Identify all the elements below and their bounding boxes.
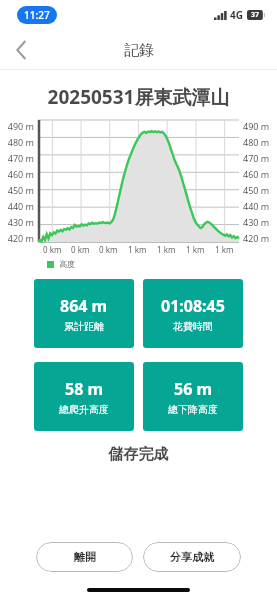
staticText: 420 m — [243, 232, 277, 242]
staticText: 440 m — [0, 200, 34, 210]
staticText: 0 km — [71, 244, 90, 255]
staticText: 11:27 — [24, 8, 50, 22]
staticText: 430 m — [243, 216, 277, 226]
button[interactable]: Back — [0, 30, 42, 70]
button[interactable]: 分享成就 — [143, 542, 241, 572]
staticText: 分享成就 — [170, 550, 214, 564]
staticText: 480 m — [0, 136, 34, 146]
staticText: 440 m — [243, 200, 277, 210]
staticText: 490 m — [0, 120, 34, 130]
button[interactable]: 58 m — [34, 362, 134, 431]
staticText: 450 m — [0, 184, 34, 194]
staticText: 4G — [230, 8, 243, 22]
button[interactable]: 56 m — [143, 362, 243, 431]
staticText: 450 m — [243, 184, 277, 194]
staticText: 花費時間 — [173, 320, 213, 333]
staticText: 總下降高度 — [168, 403, 218, 416]
staticText: 420 m — [0, 232, 34, 242]
staticText: 1 km — [215, 244, 234, 255]
staticText: 470 m — [243, 152, 277, 162]
staticText: 01:08:45 — [161, 295, 225, 317]
staticText: 20250531屏東武潭山 — [0, 84, 277, 110]
staticText: 490 m — [243, 120, 277, 130]
staticText: 離開 — [74, 550, 96, 564]
staticText: 470 m — [0, 152, 34, 162]
staticText: 460 m — [0, 168, 34, 178]
staticText: 1 km — [128, 244, 147, 255]
staticText: 0 km — [99, 244, 118, 255]
staticText: 儲存完成 — [0, 445, 277, 464]
staticText: 430 m — [0, 216, 34, 226]
button[interactable]: 864 m — [34, 279, 134, 348]
staticText: 56 m — [174, 378, 213, 400]
staticText: 37 — [251, 10, 260, 20]
staticText: 總爬升高度 — [59, 403, 109, 416]
staticText: 460 m — [243, 168, 277, 178]
staticText: 58 m — [65, 378, 104, 400]
staticText: 累計距離 — [64, 320, 104, 333]
staticText: 1 km — [157, 244, 176, 255]
staticText: 1 km — [186, 244, 205, 255]
button[interactable]: 01:08:45 — [143, 279, 243, 348]
staticText: 0 km — [43, 244, 62, 255]
staticText: 480 m — [243, 136, 277, 146]
staticText: 高度 — [59, 259, 75, 269]
staticText: 記錄 — [124, 41, 154, 60]
staticText: 864 m — [60, 295, 108, 317]
button[interactable]: 離開 — [36, 542, 133, 572]
